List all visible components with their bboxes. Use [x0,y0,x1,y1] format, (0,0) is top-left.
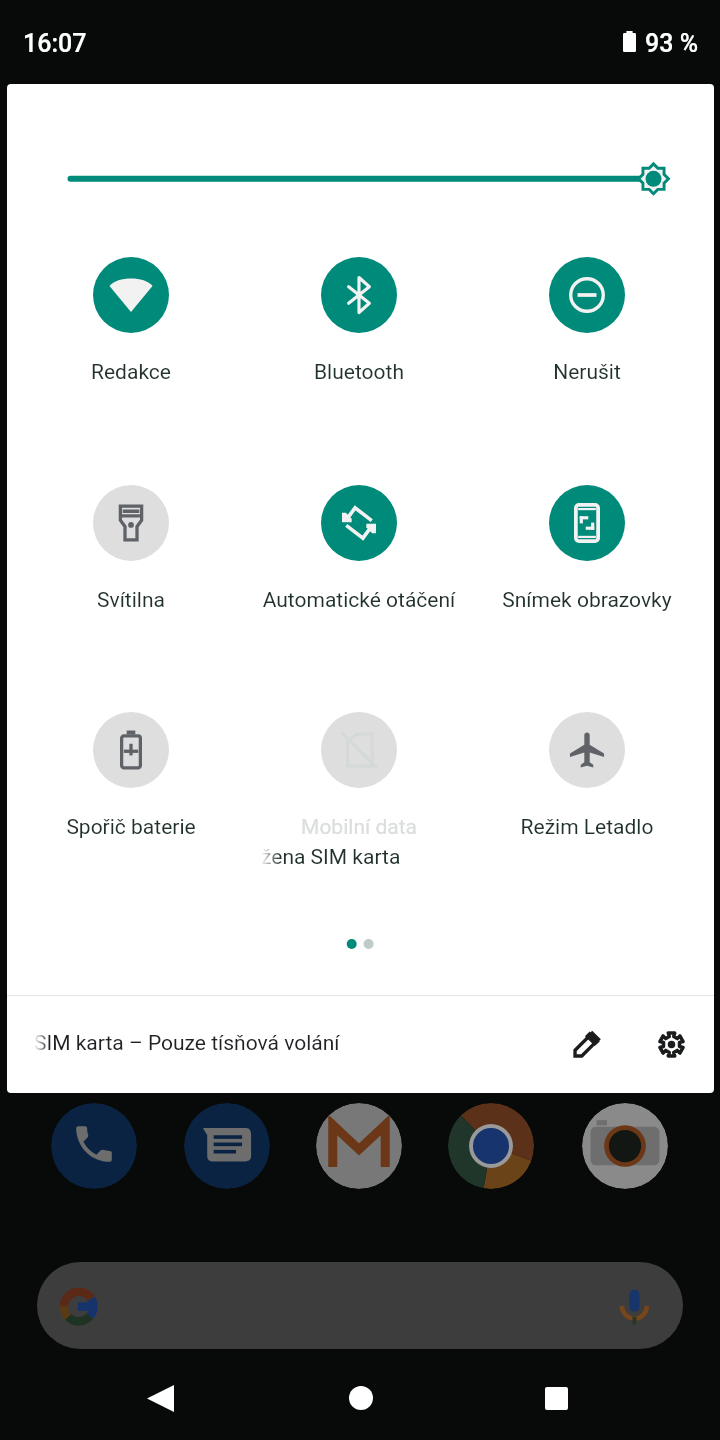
button[interactable]: Home [331,1368,391,1428]
button[interactable]: gmail [316,1103,402,1189]
button[interactable]: Nerušit [473,249,701,399]
button[interactable]: Edit [559,1016,615,1072]
button[interactable]: chrome [448,1103,534,1189]
staticText: 93 % [645,29,699,58]
staticText: Bluetooth [245,360,473,385]
button[interactable]: Spořič baterie [17,704,245,854]
staticText: Redakce [17,360,245,385]
button[interactable]: messages [184,1103,270,1189]
button[interactable]: Bluetooth [245,249,473,399]
staticText: Svítilna [17,588,245,613]
staticText: žena SIM karta [261,845,401,870]
staticText: 16:07 [23,29,87,58]
button[interactable]: Redakce [17,249,245,399]
button[interactable]: Back [130,1368,190,1428]
staticText: Režim Letadlo [473,815,701,840]
button[interactable]: Settings [643,1016,699,1072]
button[interactable]: Automatické otáčení [245,477,473,627]
staticText: Automatické otáčení [245,588,473,613]
button[interactable]: Snímek obrazovky [473,477,701,627]
button[interactable]: Režim Letadlo [473,704,701,854]
button[interactable]: Recents [526,1368,586,1428]
button[interactable]: Search [37,1262,683,1349]
button[interactable]: camera [582,1103,668,1189]
staticText: Nerušit [473,360,701,385]
button[interactable]: phone [51,1103,137,1189]
button[interactable]: Svítilna [17,477,245,627]
staticText: Snímek obrazovky [473,588,701,613]
staticText: Spořič baterie [17,815,245,840]
button[interactable]: Mobilní data [245,704,473,854]
staticText: SIM karta – Pouze tísňová volání [34,1031,340,1056]
staticText: Mobilní data [245,815,473,840]
